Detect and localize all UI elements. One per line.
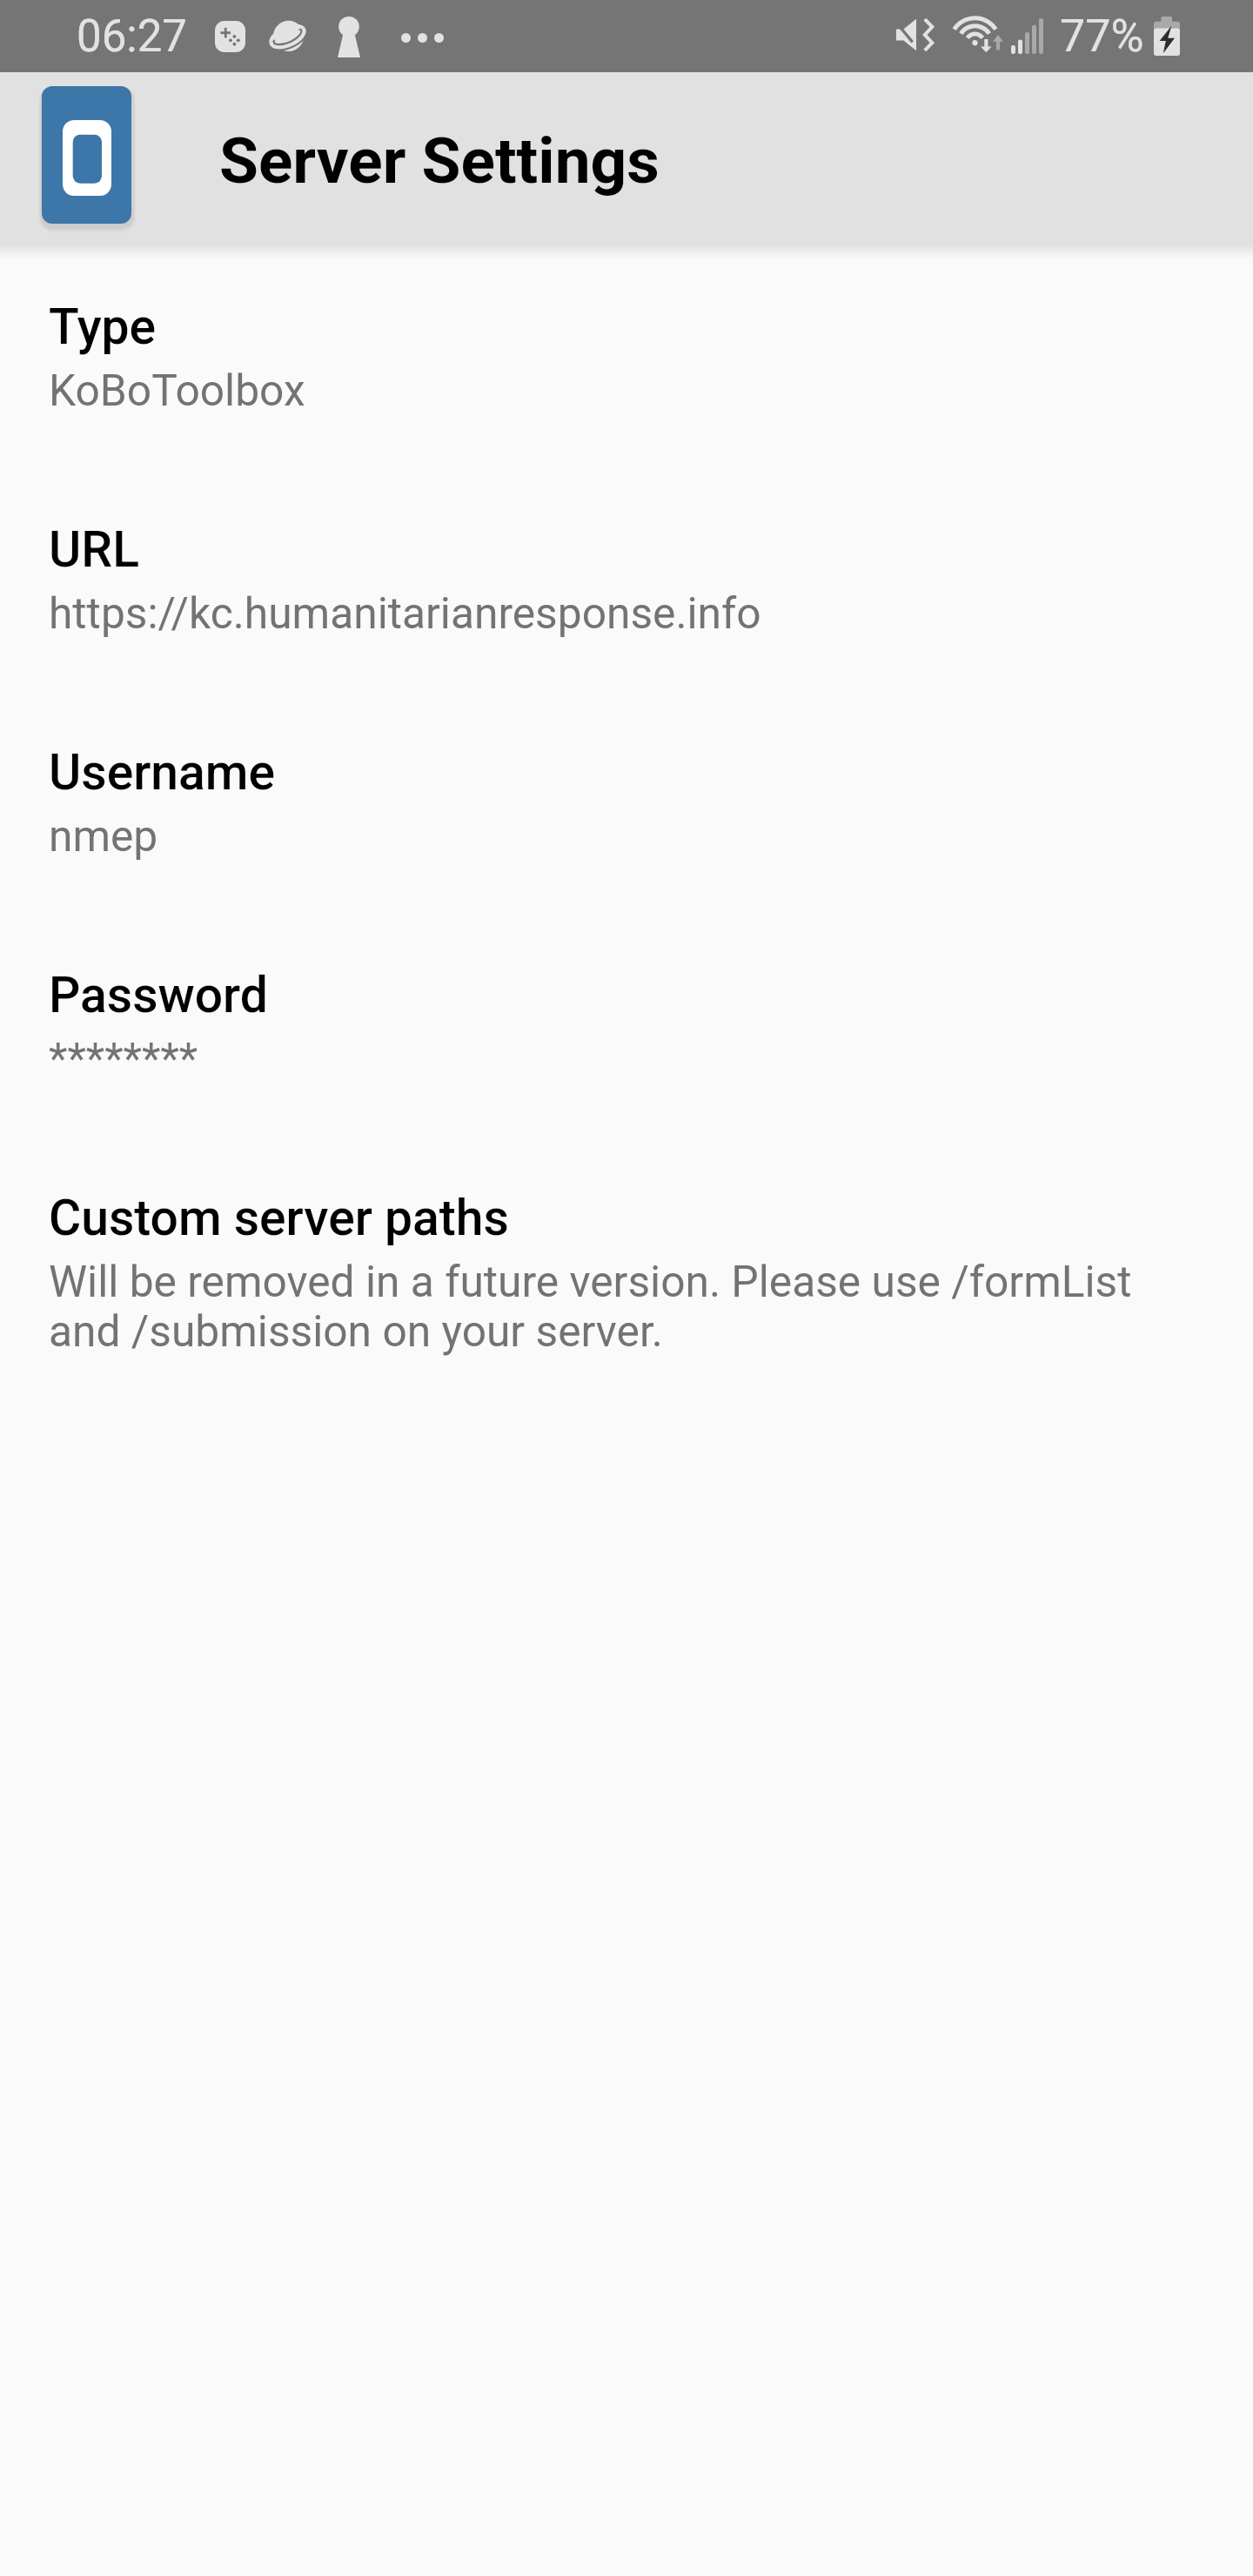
staticText: Server Settings [219,124,660,198]
staticText: Custom server paths [49,1189,509,1247]
staticText: 06:27 [77,10,188,63]
staticText: Will be removed in a future version. Ple… [49,1257,1171,1357]
staticText: Type [49,298,157,356]
staticText: ******** [49,1034,198,1084]
button[interactable]: Password [0,914,1253,1137]
button[interactable]: Type [0,245,1253,468]
staticText: URL [49,520,139,579]
button[interactable]: Username [0,691,1253,914]
staticText: Username [49,743,275,802]
button[interactable]: URL [0,468,1253,691]
staticText: KoBoToolbox [49,366,305,416]
staticText: nmep [49,811,158,862]
staticText: https://kc.humanitarianresponse.info [49,588,761,639]
button[interactable]: Custom server paths [0,1137,1253,1409]
staticText: 77% [1060,10,1144,63]
staticText: Password [49,966,268,1024]
button[interactable]: App icon [42,86,131,224]
